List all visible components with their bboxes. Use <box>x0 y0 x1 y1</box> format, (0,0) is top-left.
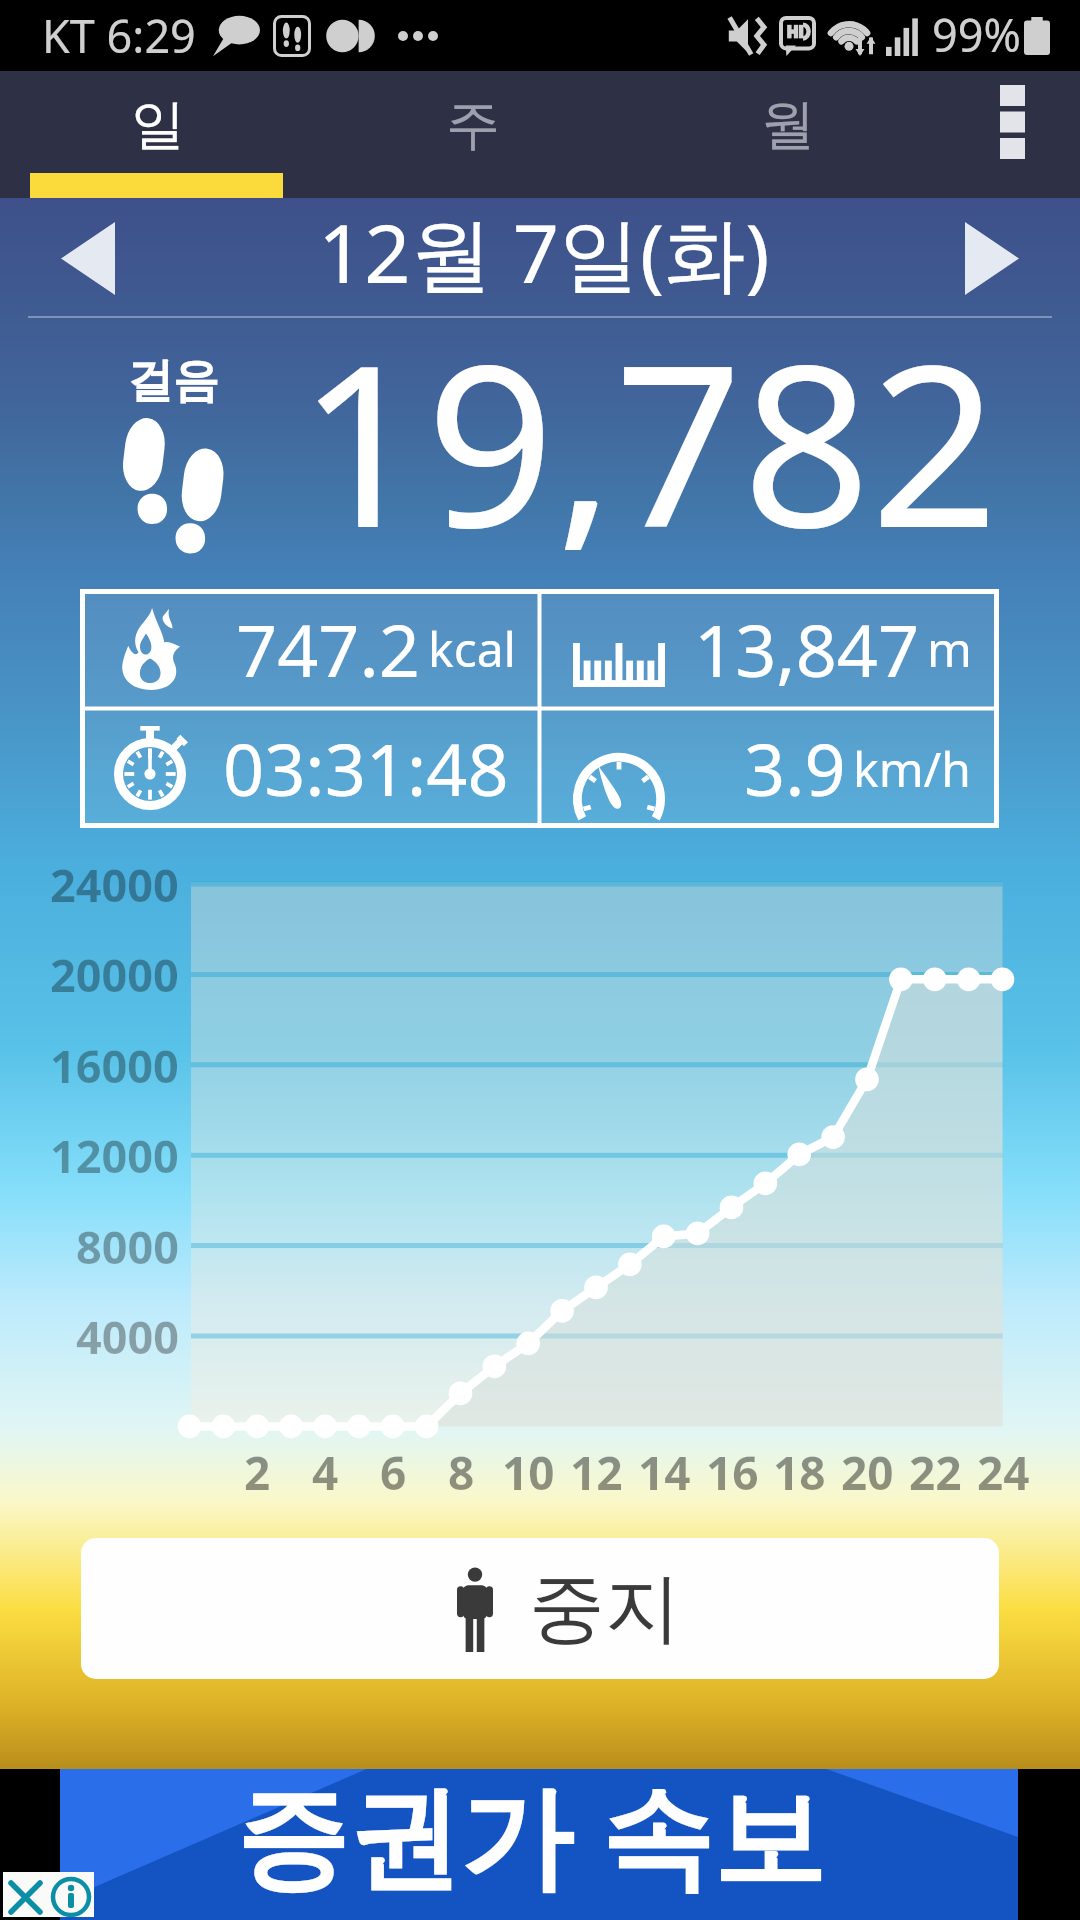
button[interactable]: 3.9 <box>539 708 999 828</box>
button[interactable]: 747.2 <box>80 589 539 708</box>
button[interactable]: 월 <box>630 74 945 176</box>
staticText: 24 <box>977 1441 1030 1501</box>
button[interactable]: 13,847 <box>539 589 999 708</box>
staticText: 2 <box>244 1441 271 1501</box>
staticText: 4 <box>312 1441 339 1501</box>
button[interactable]: 주 <box>315 74 630 176</box>
staticText: 99% <box>932 4 1021 65</box>
staticText: 4000 <box>76 1306 179 1367</box>
button[interactable]: 중지 <box>81 1538 999 1679</box>
button[interactable]: 03:31:48 <box>80 708 539 828</box>
button[interactable]: Next day <box>924 198 1060 318</box>
staticText: km/h <box>853 736 972 801</box>
button[interactable]: Previous day <box>20 198 156 318</box>
staticText: 중지 <box>529 1561 681 1657</box>
staticText: 월 <box>761 91 815 159</box>
staticText: 12000 <box>50 1125 179 1186</box>
staticText: 03:31:48 <box>223 719 509 817</box>
staticText: 걸음 <box>127 352 219 410</box>
button[interactable]: More options <box>945 71 1080 173</box>
staticText: 12월 7일(화) <box>318 196 770 307</box>
staticText: 16000 <box>50 1035 179 1096</box>
staticText: 14 <box>638 1441 691 1501</box>
staticText: 16 <box>706 1441 759 1501</box>
staticText: 8000 <box>76 1216 179 1277</box>
staticText: 20 <box>841 1441 894 1501</box>
staticText: m <box>927 616 972 681</box>
staticText: 12 <box>570 1441 623 1501</box>
staticText: 주 <box>446 91 500 159</box>
staticText: 8 <box>448 1441 475 1501</box>
staticText: 20000 <box>50 944 179 1005</box>
staticText: 증권가 속보 <box>236 1757 826 1908</box>
staticText: 747.2 <box>236 600 421 698</box>
button[interactable]: Close ad <box>3 1872 94 1917</box>
staticText: 22 <box>909 1441 962 1501</box>
staticText: 13,847 <box>694 600 920 698</box>
staticText: 18 <box>773 1441 826 1501</box>
button[interactable]: 증권가 속보 <box>60 1769 1018 1920</box>
staticText: 10 <box>502 1441 555 1501</box>
staticText: 19,782 <box>298 288 999 550</box>
staticText: kcal <box>428 616 516 681</box>
button[interactable]: 일 <box>0 74 315 176</box>
staticText: 일 <box>131 91 185 159</box>
staticText: 6 <box>380 1441 407 1501</box>
staticText: KT 6:29 <box>42 5 196 66</box>
staticText: 24000 <box>50 854 179 915</box>
staticText: 3.9 <box>744 719 846 817</box>
